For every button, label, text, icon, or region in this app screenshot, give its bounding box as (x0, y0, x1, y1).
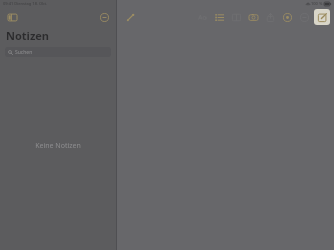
staticText: Keine Notizen (35, 141, 81, 151)
button[interactable]: Kamera (246, 10, 260, 24)
staticText: Suchen (15, 49, 33, 56)
button[interactable]: Mehr (280, 10, 294, 24)
staticText: 100 % (311, 1, 323, 6)
button[interactable]: Seitenleiste (5, 10, 19, 24)
button[interactable]: Checkliste (212, 10, 226, 24)
staticText: 09:41 Dienstag 18. Okt. (3, 1, 48, 6)
staticText: Notizen (6, 28, 50, 43)
button[interactable]: Suchen (5, 47, 111, 57)
button[interactable]: Mehr (97, 10, 111, 24)
button[interactable]: Markup (123, 10, 137, 24)
button[interactable]: Neue Notiz (314, 9, 330, 25)
